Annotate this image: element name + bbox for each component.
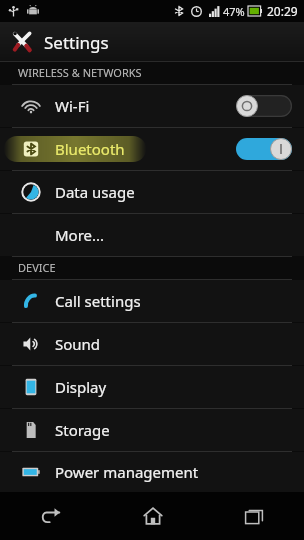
button[interactable]: More... (0, 214, 304, 256)
staticText: Wi-Fi (55, 96, 90, 116)
button[interactable]: Sound (0, 323, 304, 365)
staticText: 20:29 (267, 3, 298, 19)
button[interactable]: Power management (0, 452, 304, 492)
staticText: Storage (55, 420, 110, 440)
staticText: Settings (44, 31, 109, 54)
staticText: Data usage (55, 182, 135, 202)
button[interactable]: Data usage (0, 171, 304, 213)
button[interactable]: Display (0, 366, 304, 408)
staticText: Call settings (55, 291, 141, 311)
staticText: 47% (223, 4, 245, 19)
staticText: Sound (55, 334, 101, 354)
button[interactable]: Switch off (236, 95, 292, 117)
button[interactable]: Call settings (0, 280, 304, 322)
staticText: WIRELESS & NETWORKS (18, 65, 142, 80)
button[interactable]: Storage (0, 409, 304, 451)
staticText: More... (55, 225, 105, 245)
staticText: Bluetooth (55, 139, 125, 159)
staticText: Power management (55, 462, 199, 482)
staticText: Display (55, 377, 107, 397)
button[interactable]: Recent apps (203, 492, 304, 540)
staticText: DEVICE (18, 260, 56, 275)
button[interactable]: Wi-Fi (0, 85, 304, 127)
button[interactable]: Back (0, 492, 102, 540)
button[interactable]: Switch on (236, 138, 292, 160)
button[interactable]: Home (102, 492, 203, 540)
button[interactable]: Bluetooth (0, 128, 304, 170)
